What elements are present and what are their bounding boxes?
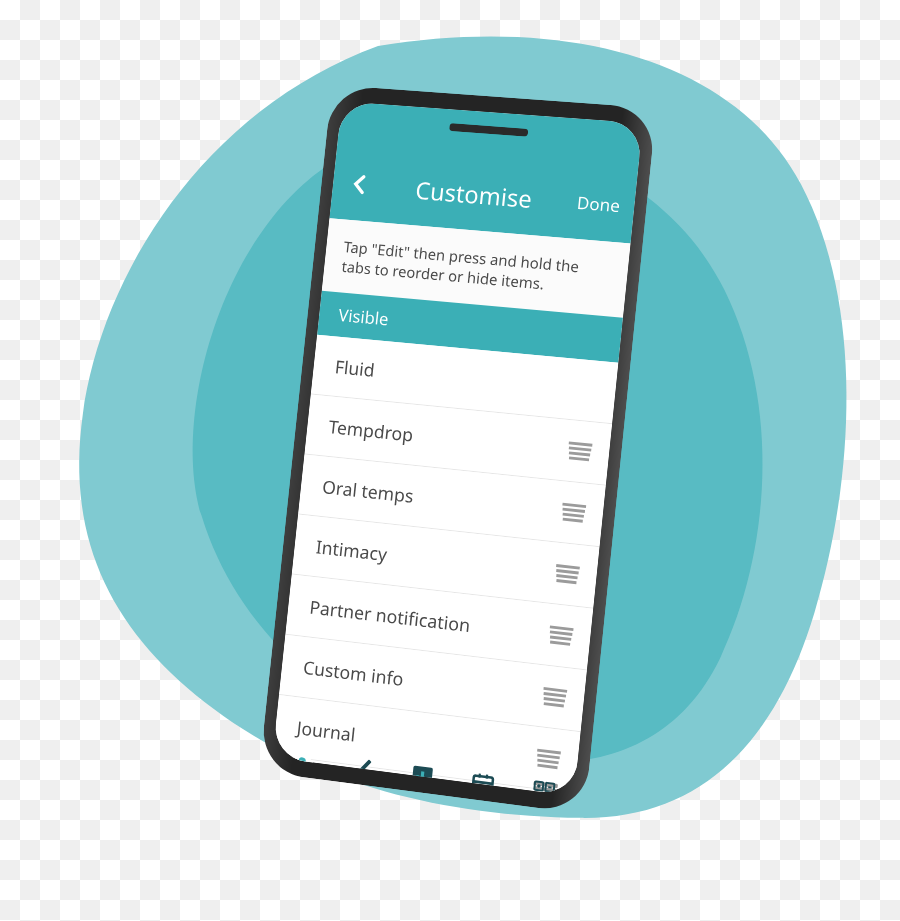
button[interactable]: Journal	[273, 695, 581, 793]
staticText: Visible	[337, 303, 390, 330]
other: Reorder Journal	[534, 744, 563, 774]
staticText: Tap "Edit" then press and hold the tabs …	[341, 236, 611, 299]
button[interactable]: Intimacy	[292, 514, 599, 608]
staticText: Fluid	[334, 354, 600, 404]
button[interactable]: Photos	[272, 755, 574, 796]
other: Reorder Custom info	[540, 683, 569, 712]
button[interactable]: Custom info	[279, 635, 587, 731]
button[interactable]: Oral temps	[298, 454, 606, 546]
staticText: Journal	[296, 715, 536, 770]
other: Reorder Photos	[532, 789, 558, 794]
staticText: Intimacy	[315, 534, 555, 586]
other: Reorder Oral temps	[559, 498, 588, 527]
staticText: Custom info	[302, 655, 543, 709]
staticText: Done	[576, 191, 621, 217]
staticText: Customise tracking	[383, 171, 565, 218]
staticText: Photos	[293, 758, 532, 791]
other: Reorder Tempdrop	[565, 437, 594, 466]
staticText: Oral temps	[321, 474, 562, 524]
other: Reorder Intimacy	[553, 560, 582, 589]
staticText: Partner notification	[308, 595, 549, 647]
button[interactable]: Fluid	[311, 335, 618, 423]
button[interactable]: Partner notification	[285, 574, 593, 669]
button[interactable]: Back	[330, 156, 388, 213]
staticText: Tempdrop	[327, 414, 568, 463]
button[interactable]: Done	[561, 178, 637, 230]
button[interactable]: Tempdrop	[304, 395, 612, 485]
other: Reorder Partner notification	[546, 621, 575, 650]
